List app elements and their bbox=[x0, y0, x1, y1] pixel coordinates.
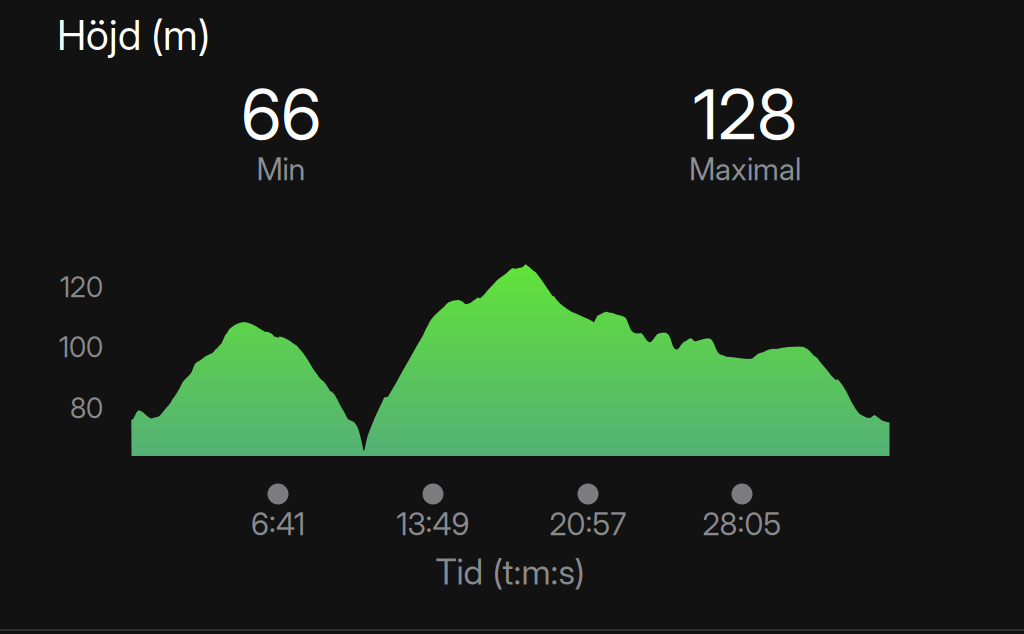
staticText: 128 bbox=[693, 72, 797, 156]
staticText: 6:41 bbox=[251, 505, 305, 542]
staticText: Min bbox=[256, 150, 305, 187]
staticText: 28:05 bbox=[702, 505, 781, 542]
staticText: 120 bbox=[60, 270, 103, 304]
staticText: 80 bbox=[70, 391, 103, 425]
staticText: 20:57 bbox=[549, 505, 626, 542]
staticText: Tid (t:m:s) bbox=[435, 551, 584, 593]
staticText: 13:49 bbox=[396, 505, 469, 542]
staticText: Höjd (m) bbox=[57, 10, 210, 60]
staticText: 100 bbox=[59, 330, 103, 364]
staticText: 66 bbox=[241, 72, 321, 156]
staticText: Maximal bbox=[689, 150, 801, 187]
